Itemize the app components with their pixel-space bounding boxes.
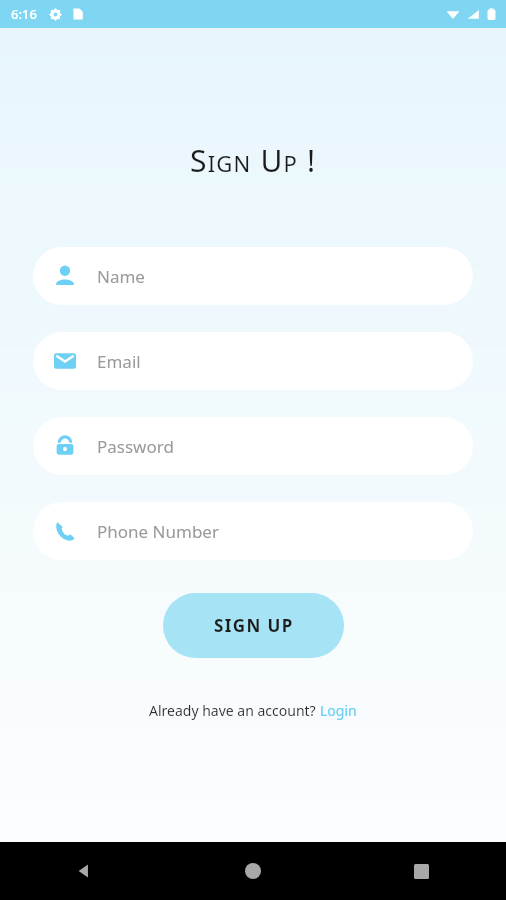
staticText: 6:16 <box>11 5 37 23</box>
button[interactable]: Name <box>33 247 473 305</box>
staticText: Already have an account? <box>149 701 320 720</box>
button[interactable]: Phone Number <box>33 502 473 560</box>
button[interactable]: Password <box>33 417 473 475</box>
button[interactable]: Email <box>33 332 473 390</box>
staticText: SIGN UP <box>214 614 294 637</box>
staticText: Name <box>97 265 145 288</box>
staticText: Phone Number <box>97 520 219 543</box>
staticText: Login <box>320 701 357 720</box>
button[interactable]: Home <box>168 842 337 900</box>
button[interactable]: Recent apps <box>337 842 506 900</box>
staticText: Email <box>97 350 141 373</box>
button[interactable]: Back <box>0 842 168 900</box>
staticText: SIGN UP ! <box>190 140 317 181</box>
staticText: Password <box>97 435 174 458</box>
button[interactable]: SIGN UP <box>163 593 344 658</box>
button[interactable]: Login <box>320 701 357 720</box>
